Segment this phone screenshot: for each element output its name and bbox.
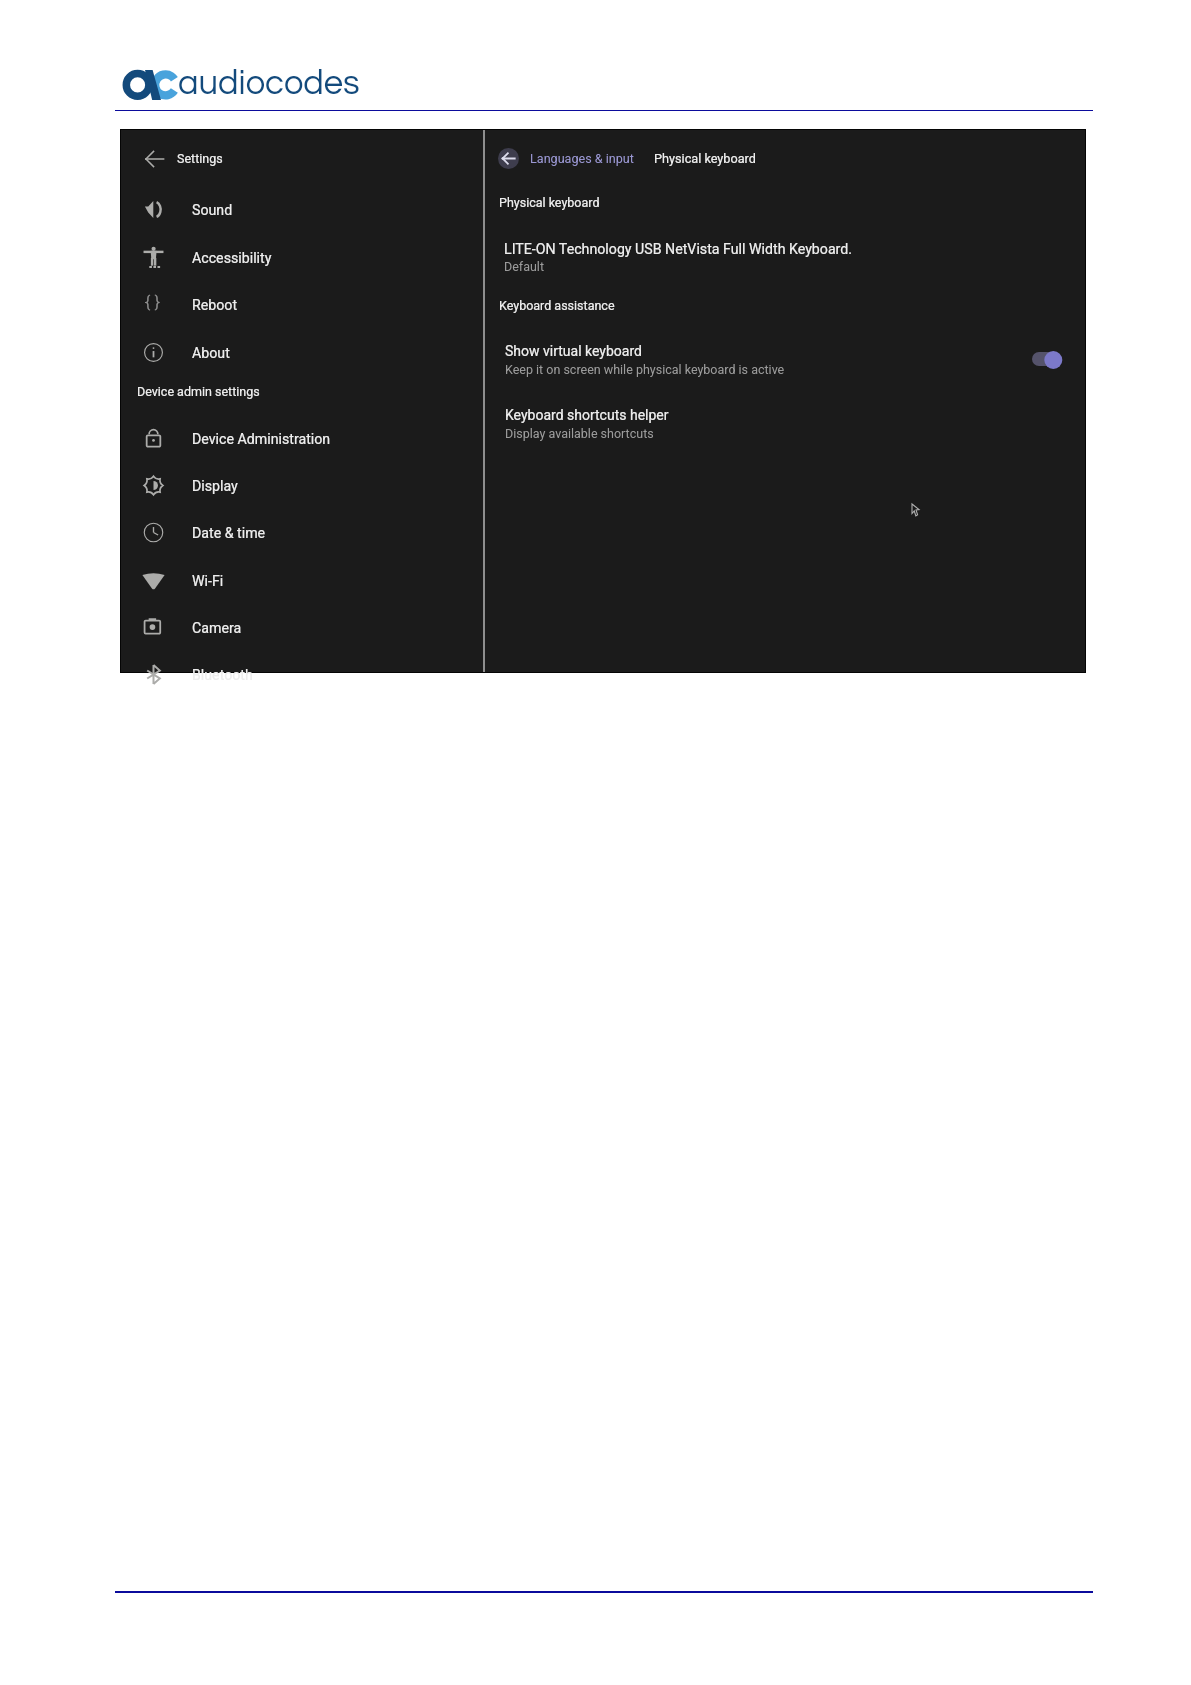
staticText: Wi-Fi [192, 573, 224, 590]
button[interactable]: Camera [121, 609, 483, 645]
button[interactable]: Back [139, 145, 169, 173]
button[interactable]: Accessibility [121, 239, 483, 275]
button[interactable]: Back [498, 148, 519, 169]
staticText: Physical keyboard [499, 195, 600, 210]
staticText: Settings [177, 151, 223, 166]
button[interactable]: Wi-Fi [121, 562, 483, 598]
button[interactable]: Sound [121, 191, 483, 227]
staticText: Reboot [192, 297, 238, 314]
staticText: audiocodes [178, 66, 360, 102]
staticText: { } [145, 293, 160, 312]
button[interactable]: Bluetooth [121, 656, 483, 692]
button[interactable]: Device Administration [121, 420, 483, 456]
staticText: Display [192, 478, 238, 495]
button[interactable]: Date & time [121, 514, 483, 550]
button[interactable]: Show virtual keyboard [485, 340, 1085, 380]
staticText: Sound [192, 202, 233, 219]
button[interactable]: Display [121, 467, 483, 503]
staticText: Accessibility [192, 250, 272, 267]
staticText: Languages & input [530, 151, 634, 166]
staticText: Show virtual keyboard [505, 343, 642, 359]
button[interactable]: LITE-ON Technology USB NetVista Full Wid… [485, 238, 1085, 278]
staticText: Display available shortcuts [505, 426, 654, 441]
button[interactable]: About [121, 334, 483, 370]
button[interactable]: Back [121, 141, 483, 177]
staticText: About [192, 345, 230, 362]
staticText: Bluetooth [192, 667, 253, 684]
staticText: Default [504, 259, 544, 274]
staticText: Date & time [192, 525, 266, 542]
staticText: Device admin settings [137, 384, 260, 399]
staticText: Camera [192, 620, 242, 637]
staticText: LITE-ON Technology USB NetVista Full Wid… [504, 241, 853, 258]
button[interactable]: Show virtual keyboard [1032, 351, 1063, 369]
button[interactable]: Keyboard shortcuts helper [485, 405, 1085, 445]
staticText: Keyboard assistance [499, 298, 615, 313]
button[interactable]: Back [485, 141, 1085, 177]
staticText: Physical keyboard [654, 151, 756, 166]
staticText: Keyboard shortcuts helper [505, 407, 669, 423]
button[interactable]: { } [121, 286, 483, 322]
staticText: Device Administration [192, 431, 331, 448]
staticText: Keep it on screen while physical keyboar… [505, 362, 785, 377]
